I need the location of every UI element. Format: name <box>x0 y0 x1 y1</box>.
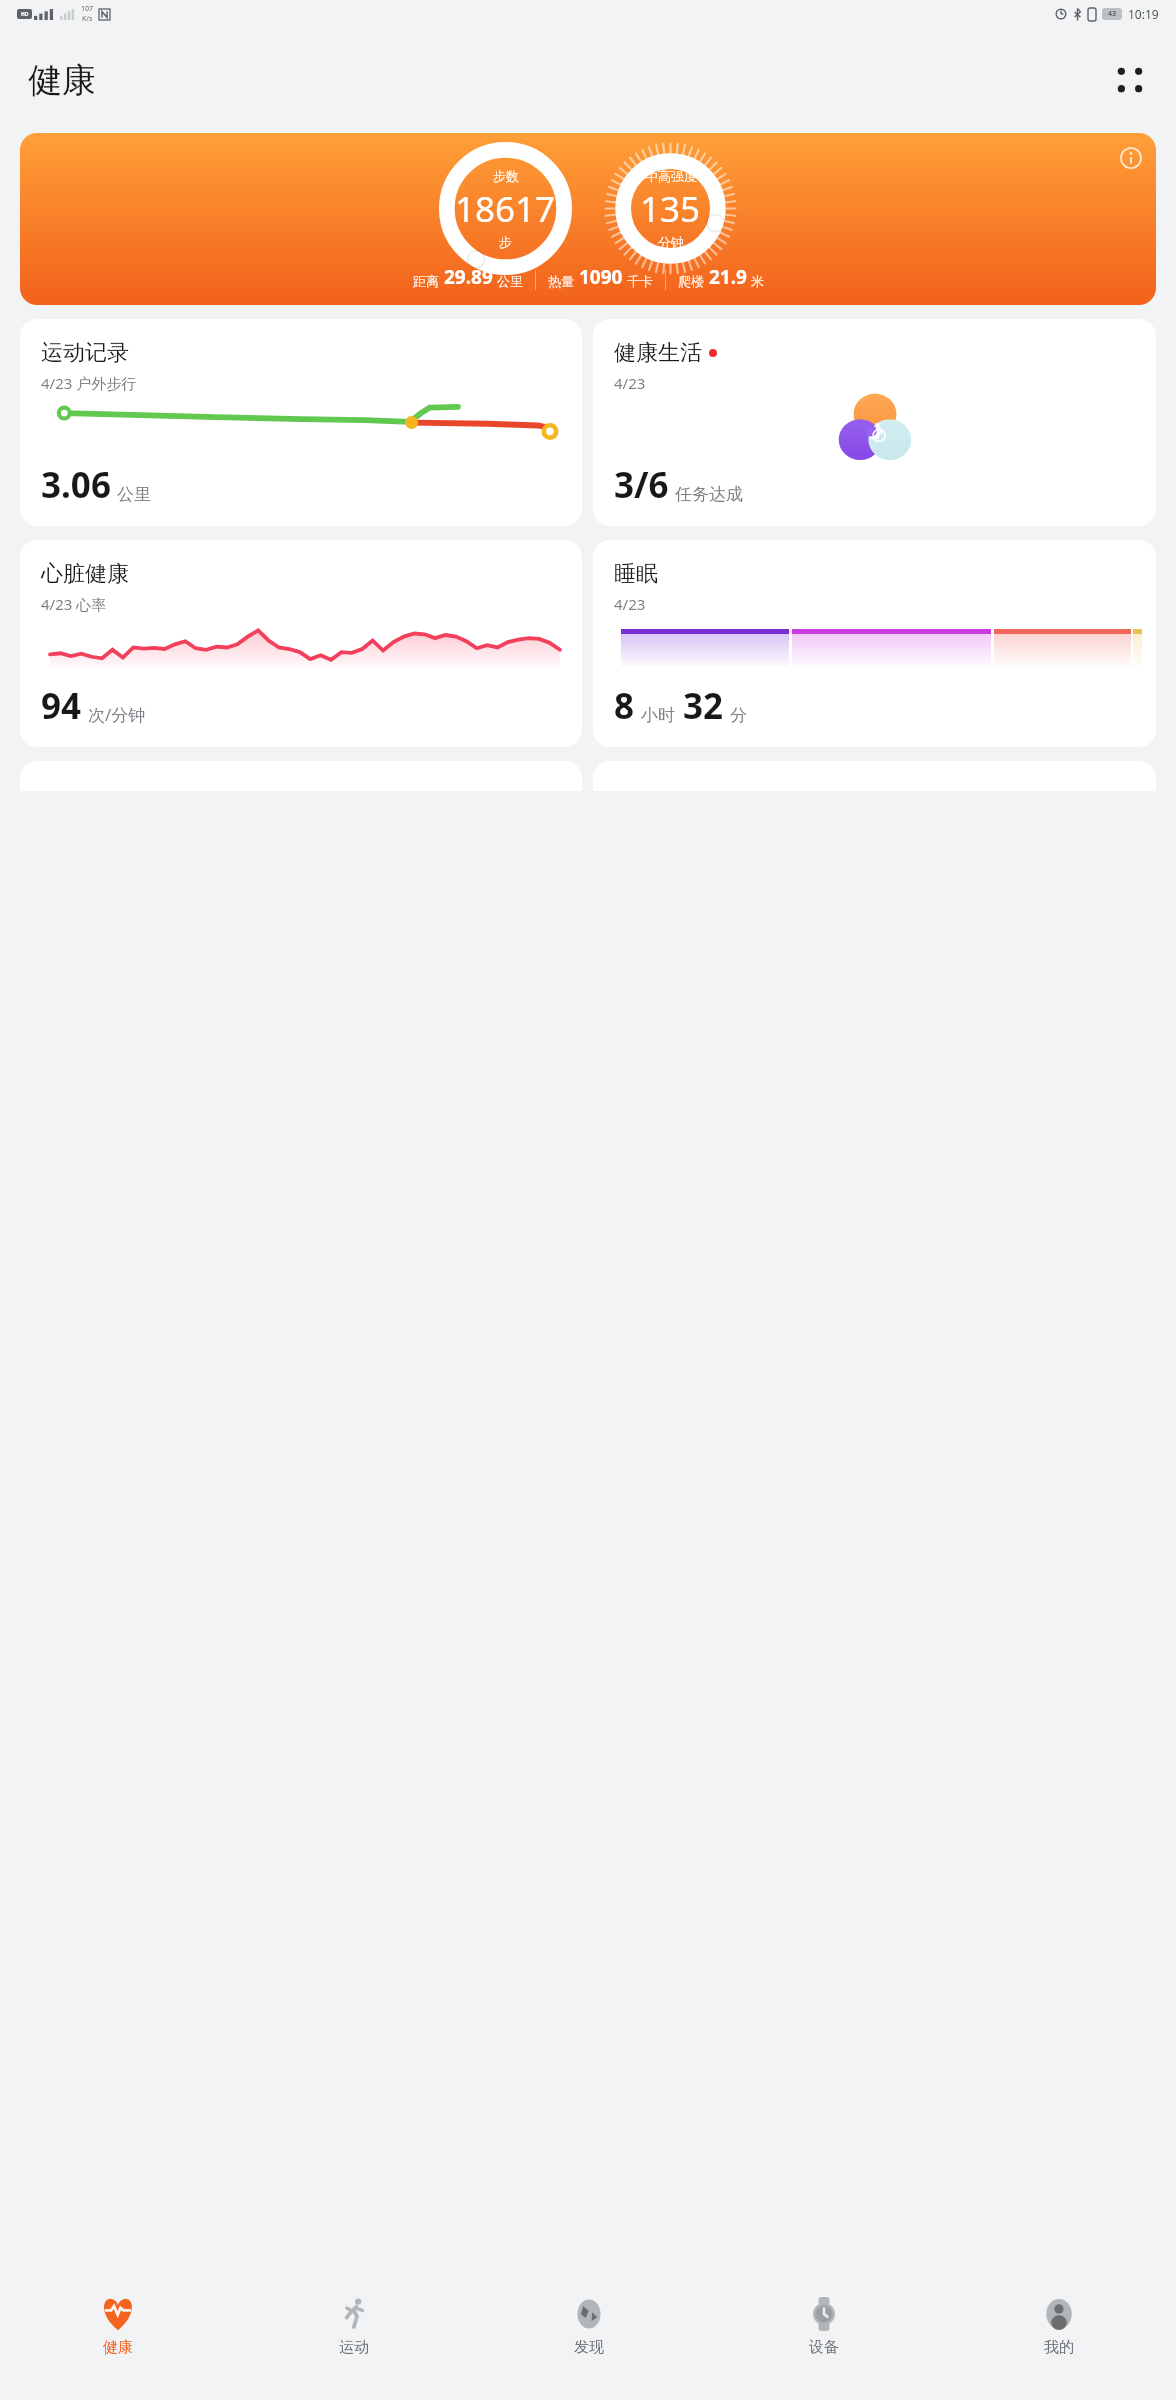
staticText: HD <box>21 11 29 18</box>
staticText: 心脏健康 <box>41 560 129 588</box>
staticText: 3.06 <box>41 461 111 509</box>
staticText: 21.9 <box>709 264 747 290</box>
staticText: 公里 <box>497 273 523 289</box>
staticText: 次/分钟 <box>88 703 146 726</box>
staticText: 任务达成 <box>675 484 743 505</box>
staticText: 小时 <box>641 705 675 726</box>
staticText: 29.89 <box>444 264 493 290</box>
staticText: 爬楼 <box>678 273 704 289</box>
staticText: 4/23 心率 <box>41 594 107 614</box>
button[interactable]: 设备 <box>706 2282 941 2400</box>
staticText: 步 <box>499 234 512 250</box>
staticText: 135 <box>640 185 701 233</box>
staticText: 设备 <box>809 2338 839 2357</box>
staticText: 32 <box>683 682 724 730</box>
staticText: 3/6 <box>614 461 669 509</box>
staticText: 健康 <box>28 59 96 102</box>
staticText: 运动 <box>339 2338 369 2357</box>
staticText: 10:19 <box>1128 6 1159 22</box>
button[interactable]: Info <box>20 133 1156 305</box>
button[interactable]: 运动记录 <box>20 319 582 526</box>
staticText: K/s <box>82 14 93 24</box>
button[interactable]: 健康 <box>0 2282 236 2400</box>
button[interactable]: 发现 <box>471 2282 706 2400</box>
staticText: 18617 <box>455 185 556 233</box>
button[interactable]: More options <box>1100 50 1160 110</box>
staticText: 健康 <box>103 2338 133 2357</box>
button[interactable]: 运动 <box>236 2282 471 2400</box>
staticText: 94 <box>41 682 82 730</box>
staticText: 公里 <box>117 484 151 505</box>
staticText: 分 <box>730 705 747 726</box>
staticText: 千卡 <box>627 273 653 289</box>
staticText: 睡眠 <box>614 560 658 588</box>
staticText: 步数 <box>493 168 519 184</box>
staticText: 我的 <box>1044 2338 1074 2357</box>
button[interactable]: 心脏健康 <box>20 540 582 747</box>
staticText: 分钟 <box>658 234 684 250</box>
staticText: 1090 <box>579 264 623 290</box>
staticText: 发现 <box>574 2338 604 2357</box>
staticText: 4/23 <box>614 594 646 614</box>
button[interactable]: 我的 <box>941 2282 1176 2400</box>
staticText: 4/23 户外步行 <box>41 373 137 393</box>
staticText: 距离 <box>413 273 439 289</box>
staticText: 中高强度 <box>645 168 697 184</box>
staticText: 43 <box>1108 9 1117 19</box>
button[interactable]: Info <box>1111 138 1151 178</box>
staticText: 4/23 <box>614 373 646 393</box>
staticText: 健康生活 <box>614 339 702 367</box>
staticText: 米 <box>751 273 764 289</box>
staticText: 107 <box>81 4 94 14</box>
button[interactable]: 睡眠 <box>593 540 1156 747</box>
button[interactable]: 健康生活 <box>593 319 1156 526</box>
staticText: 运动记录 <box>41 339 129 367</box>
staticText: 热量 <box>548 273 574 289</box>
staticText: 8 <box>614 682 635 730</box>
